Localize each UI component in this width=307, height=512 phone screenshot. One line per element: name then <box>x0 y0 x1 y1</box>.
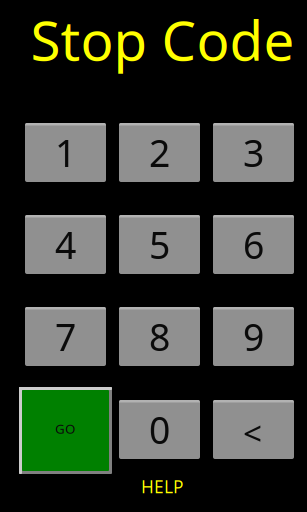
button[interactable]: 2 <box>119 123 200 182</box>
button[interactable]: 7 <box>25 307 106 366</box>
button[interactable]: 5 <box>119 215 200 274</box>
staticText: 8 <box>149 312 170 361</box>
staticText: 6 <box>243 220 264 269</box>
staticText: GO <box>55 420 75 437</box>
button[interactable]: 9 <box>213 307 294 366</box>
button[interactable]: 6 <box>213 215 294 274</box>
button[interactable]: 3 <box>213 123 294 182</box>
staticText: 2 <box>149 128 170 177</box>
button[interactable]: Go <box>19 387 112 474</box>
staticText: 0 <box>149 405 170 454</box>
button[interactable]: 8 <box>119 307 200 366</box>
staticText: 5 <box>149 220 170 269</box>
staticText: Stop Code <box>30 3 294 76</box>
staticText: 7 <box>55 312 76 361</box>
staticText: 3 <box>243 128 264 177</box>
button[interactable]: 0 <box>119 400 200 459</box>
staticText: 1 <box>55 128 76 177</box>
button[interactable]: 4 <box>25 215 106 274</box>
staticText: HELP <box>141 475 183 498</box>
button[interactable]: HELP <box>141 475 183 498</box>
button[interactable]: Delete <box>213 400 294 459</box>
staticText: 4 <box>55 220 76 269</box>
staticText: < <box>243 410 262 455</box>
staticText: 9 <box>243 312 264 361</box>
button[interactable]: 1 <box>25 123 106 182</box>
